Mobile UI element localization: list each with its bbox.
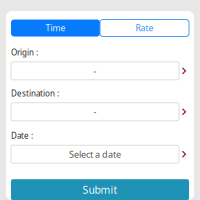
button[interactable]: Time xyxy=(11,19,100,36)
staticText: Date : xyxy=(11,130,33,141)
button[interactable]: - xyxy=(11,103,189,121)
staticText: Select a date xyxy=(69,148,121,160)
staticText: Destination : xyxy=(11,88,59,99)
button[interactable]: Select a date xyxy=(11,145,189,163)
button[interactable]: Rate xyxy=(100,19,189,36)
staticText: Time xyxy=(45,22,65,34)
staticText: - xyxy=(93,65,96,77)
button[interactable]: - xyxy=(11,62,189,80)
staticText: Submit xyxy=(82,183,117,197)
staticText: Rate xyxy=(135,22,153,34)
staticText: - xyxy=(93,106,96,118)
staticText: Origin : xyxy=(11,47,38,58)
button[interactable]: Submit xyxy=(11,179,189,200)
